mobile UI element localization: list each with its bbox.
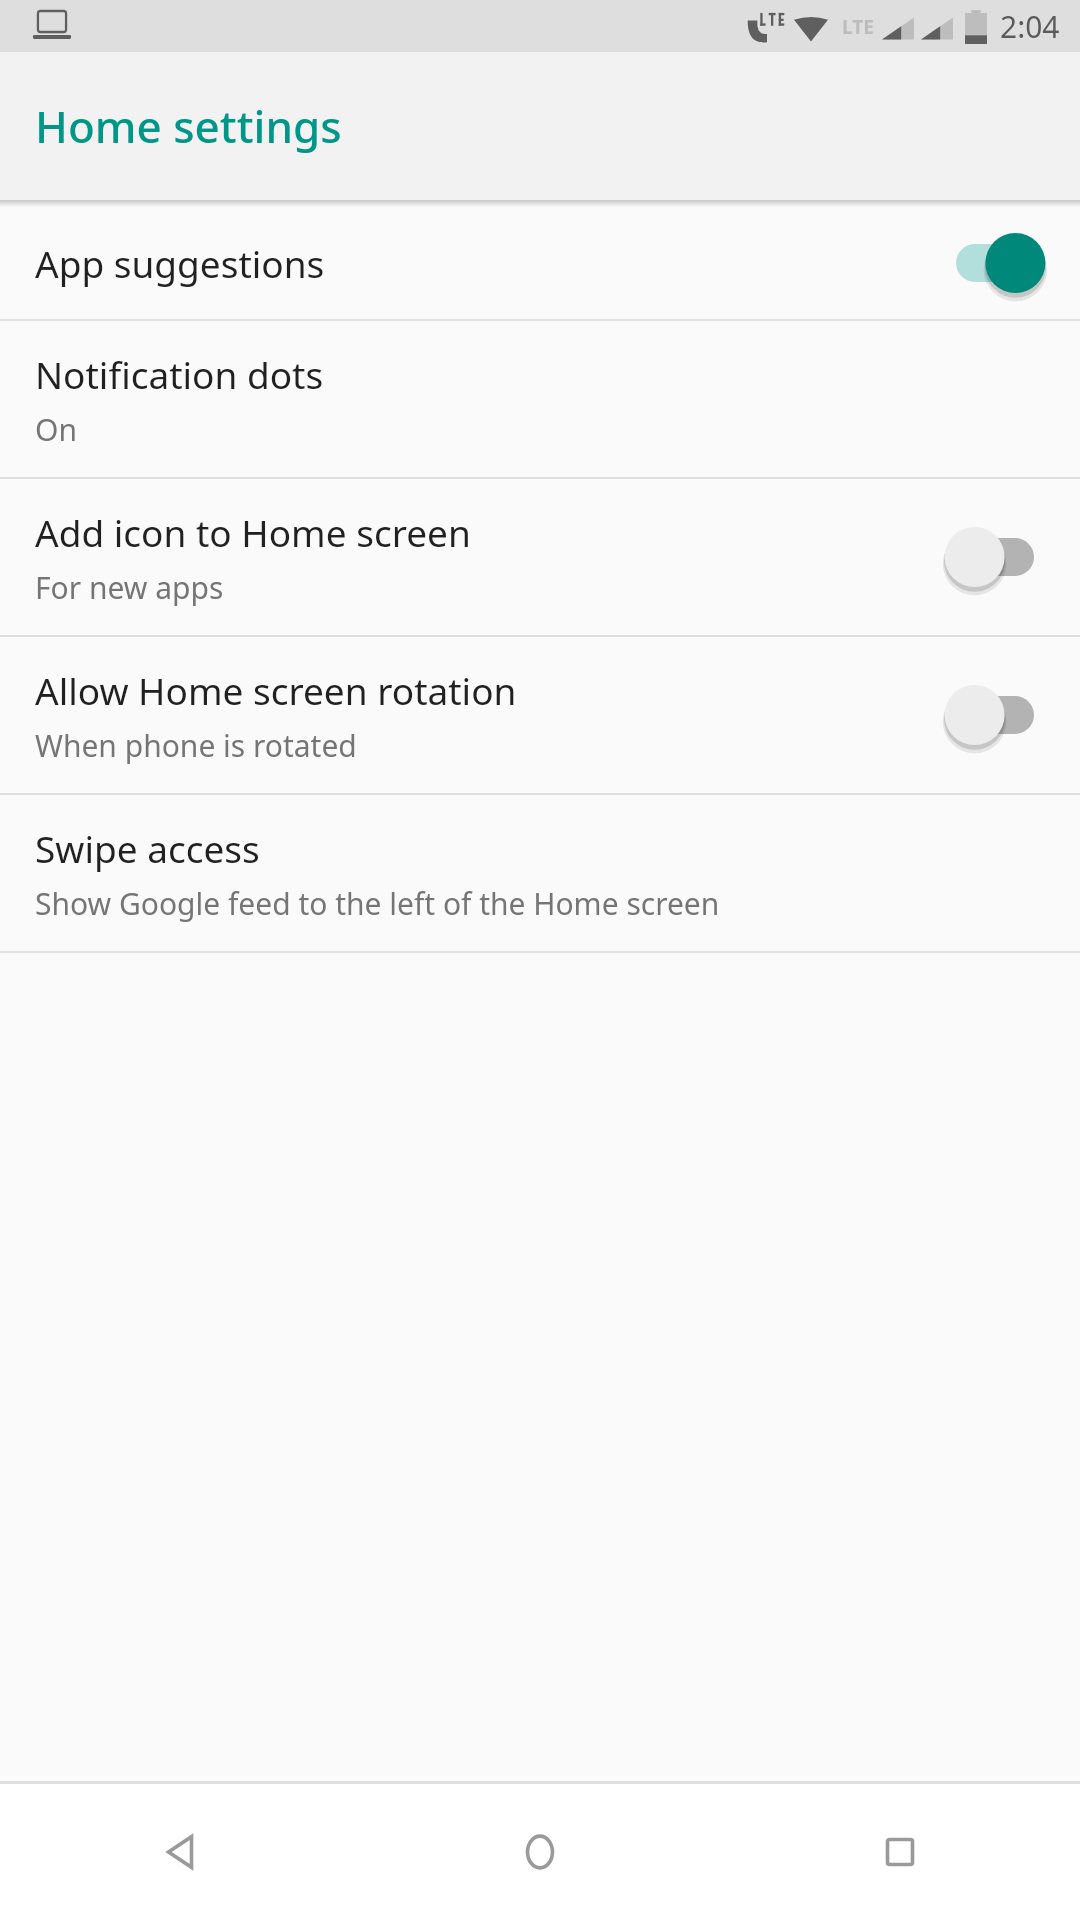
staticText: Allow Home screen rotation [35, 665, 517, 715]
staticText: Swipe access [35, 823, 260, 873]
button[interactable]: Add icon to Home screen [0, 479, 1080, 635]
staticText: For new apps [35, 567, 224, 608]
button[interactable]: Notification dots [0, 321, 1080, 477]
button[interactable]: Allow Home screen rotation off [940, 677, 1050, 753]
button[interactable]: Home [360, 1784, 720, 1920]
staticText: Home settings [35, 96, 342, 156]
button[interactable]: App suggestions on [940, 225, 1050, 301]
button[interactable]: Allow Home screen rotation [0, 637, 1080, 793]
button[interactable]: App suggestions [0, 207, 1080, 319]
staticText: On [35, 409, 77, 450]
staticText: LTE [842, 14, 874, 40]
staticText: Show Google feed to the left of the Home… [35, 883, 720, 924]
staticText: 2:04 [1000, 6, 1060, 47]
button[interactable]: Recent apps [720, 1784, 1080, 1920]
staticText: App suggestions [35, 238, 325, 288]
button[interactable]: Swipe access [0, 795, 1080, 951]
staticText: When phone is rotated [35, 725, 357, 766]
staticText: Notification dots [35, 349, 324, 399]
staticText: Add icon to Home screen [35, 507, 471, 557]
button[interactable]: Back [0, 1784, 360, 1920]
button[interactable]: Add icon to Home screen off [940, 519, 1050, 595]
